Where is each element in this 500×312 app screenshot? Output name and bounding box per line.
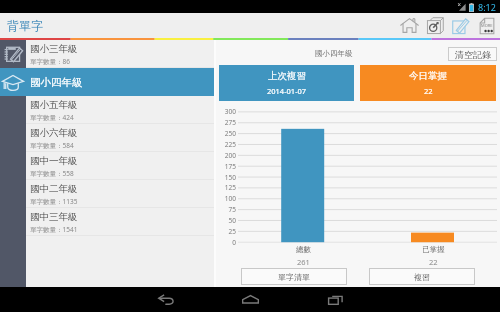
staticText: 國小三年級 [30, 43, 78, 55]
button[interactable]: 單字清單 [241, 268, 347, 285]
button[interactable]: 國小四年級 [26, 68, 214, 96]
staticText: 單字數量：86 [30, 57, 70, 66]
staticText: 100 [217, 194, 236, 203]
button[interactable]: 國小五年級 [26, 96, 214, 124]
button[interactable]: Notes [0, 40, 26, 68]
button[interactable]: Edit [448, 13, 474, 38]
button[interactable]: 清空記錄 [448, 47, 497, 61]
staticText: 2014-01-07 [267, 86, 307, 96]
staticText: 國中一年級 [30, 155, 78, 167]
staticText: 單字數量：558 [30, 169, 74, 178]
staticText: 8:12 [478, 1, 496, 13]
button[interactable]: Browse cards [422, 13, 448, 38]
staticText: 200 [217, 151, 236, 160]
button[interactable]: Home [396, 13, 422, 38]
staticText: 261 [297, 257, 310, 267]
button[interactable]: 國中二年級 [26, 180, 214, 208]
staticText: 單字數量：424 [30, 113, 74, 122]
staticText: 今日掌握 [409, 70, 447, 82]
staticText: 22 [424, 86, 433, 96]
staticText: 單字數量：1541 [30, 225, 78, 234]
staticText: 上次複習 [268, 70, 306, 82]
staticText: 125 [217, 183, 236, 192]
staticText: 國小四年級 [315, 49, 353, 58]
staticText: 單字數量：1135 [30, 197, 78, 206]
staticText: 國小四年級 [30, 76, 83, 89]
staticText: 總數 [296, 245, 311, 254]
staticText: 國中二年級 [30, 183, 78, 195]
staticText: 國小六年級 [30, 127, 78, 139]
staticText: 50 [217, 216, 236, 225]
staticText: 清空記錄 [455, 49, 491, 60]
staticText: 75 [217, 205, 236, 214]
button[interactable]: Learn [0, 68, 26, 96]
staticText: 國中三年級 [30, 211, 78, 223]
staticText: 已掌握 [422, 245, 445, 254]
staticText: 複習 [414, 272, 430, 282]
button[interactable]: Back [135, 287, 195, 312]
staticText: 單字數量：584 [30, 141, 74, 150]
staticText: 0 [217, 238, 236, 247]
staticText: 175 [217, 162, 236, 171]
staticText: 225 [217, 140, 236, 149]
staticText: 25 [217, 227, 236, 236]
staticText: 250 [217, 129, 236, 138]
staticText: 22 [429, 257, 438, 267]
button[interactable]: 上次複習 [219, 65, 354, 101]
button[interactable]: 國小三年級 [26, 40, 214, 68]
button[interactable]: 國中一年級 [26, 152, 214, 180]
staticText: 背單字 [7, 18, 43, 33]
staticText: 300 [217, 107, 236, 116]
button[interactable]: 國中三年級 [26, 208, 214, 236]
button[interactable]: 國小六年級 [26, 124, 214, 152]
staticText: 150 [217, 173, 236, 182]
button[interactable]: Home [220, 287, 280, 312]
button[interactable]: More [474, 13, 500, 38]
button[interactable]: 今日掌握 [360, 65, 496, 101]
staticText: 275 [217, 118, 236, 127]
button[interactable]: 複習 [369, 268, 475, 285]
button[interactable]: Recent apps [305, 287, 365, 312]
staticText: MORE [481, 23, 493, 28]
staticText: 國小五年級 [30, 99, 78, 111]
staticText: 單字清單 [278, 272, 310, 282]
